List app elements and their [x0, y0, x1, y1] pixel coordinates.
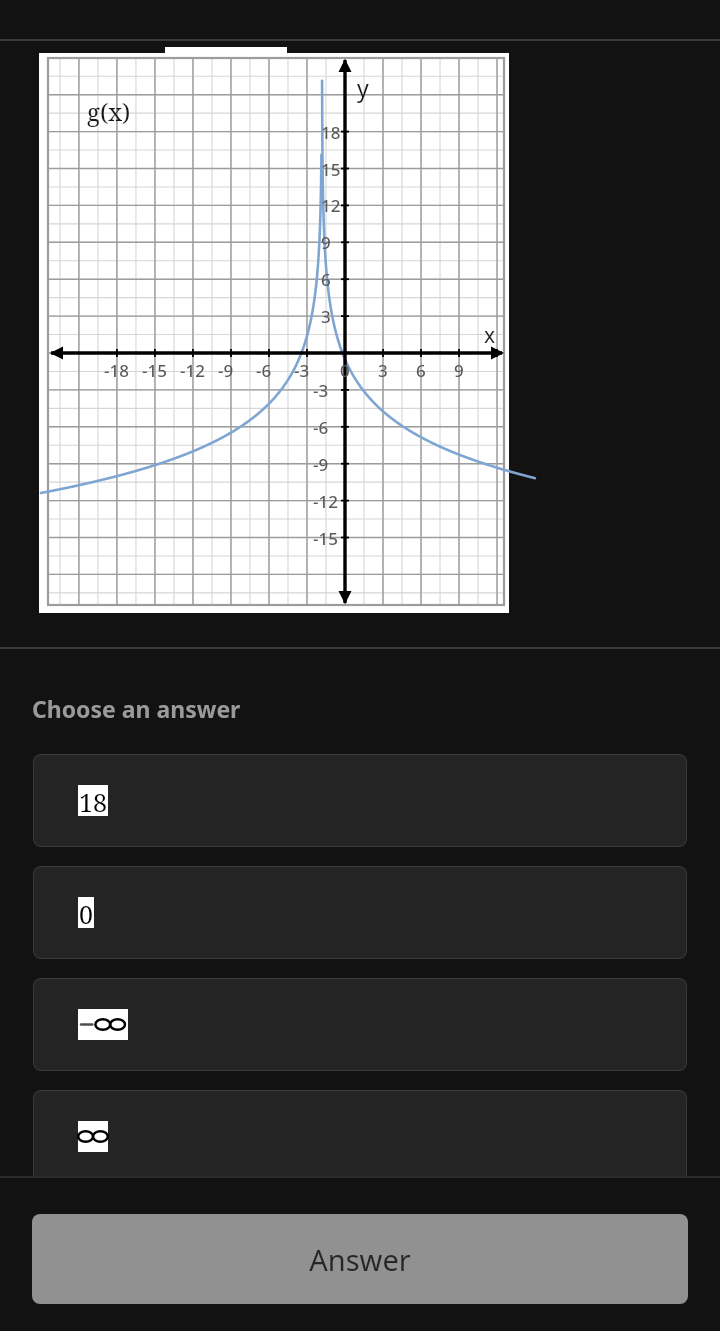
button[interactable]: 18 [33, 754, 687, 847]
staticText: Answer [309, 1240, 411, 1279]
button[interactable]: infinity [33, 1090, 687, 1183]
staticText: -12 [180, 359, 205, 382]
staticText: -6 [256, 359, 272, 382]
staticText: Choose an answer [32, 693, 241, 724]
staticText: -15 [142, 359, 167, 382]
staticText: 15 [321, 158, 341, 181]
button[interactable]: minus infinity [33, 978, 687, 1071]
staticText: -9 [218, 359, 234, 382]
staticText: 0 [340, 359, 350, 382]
staticText: 18 [321, 121, 341, 144]
staticText: -3 [313, 379, 329, 402]
staticText: 9 [321, 231, 331, 254]
staticText: -18 [104, 359, 129, 382]
staticText: 6 [321, 268, 331, 291]
staticText: 18 [79, 785, 107, 816]
staticText: x [484, 321, 496, 350]
staticText: -3 [294, 359, 310, 382]
staticText: -12 [313, 490, 338, 513]
staticText: 3 [321, 305, 331, 328]
staticText: -15 [313, 527, 338, 550]
staticText: 3 [378, 359, 388, 382]
staticText: -9 [313, 453, 329, 476]
staticText: 9 [454, 359, 464, 382]
button[interactable]: 0 [33, 866, 687, 959]
button[interactable]: Answer [32, 1214, 688, 1304]
staticText: 0 [79, 897, 93, 928]
staticText: g(x) [87, 95, 131, 128]
staticText: 12 [321, 194, 341, 217]
staticText: 6 [416, 359, 426, 382]
staticText: -6 [313, 416, 329, 439]
staticText: y [357, 72, 369, 103]
